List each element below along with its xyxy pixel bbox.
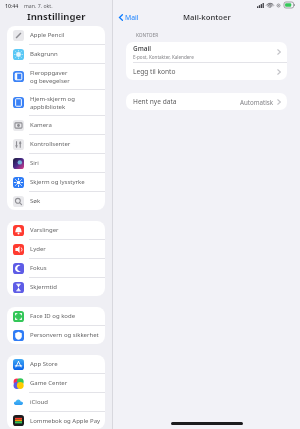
staticText: Skjermtid xyxy=(30,283,57,291)
staticText: iCloud xyxy=(30,398,48,406)
button[interactable]: Bakgrunn xyxy=(7,45,105,63)
button[interactable]: App Store xyxy=(7,355,105,373)
staticText: Bakgrunn xyxy=(30,50,58,58)
staticText: E-post, Kontakter, Kalendere xyxy=(133,54,194,60)
button[interactable]: Fleroppgaver og bevegelser xyxy=(7,64,105,89)
staticText: Automatisk xyxy=(240,98,274,106)
button[interactable]: Skjerm og lysstyrke xyxy=(7,173,105,191)
staticText: Legg til konto xyxy=(133,67,277,76)
button[interactable]: Hjem-skjerm og appbibliotek xyxy=(7,90,105,115)
button[interactable]: Hent nye data xyxy=(126,93,287,110)
staticText: man. 7. okt. xyxy=(24,2,53,9)
staticText: Mail-kontoer xyxy=(183,12,231,22)
staticText: Kamera xyxy=(30,121,52,129)
button[interactable]: Lommebok og Apple Pay xyxy=(7,412,105,429)
staticText: Fokus xyxy=(30,264,47,272)
button[interactable]: Face ID og kode xyxy=(7,307,105,325)
staticText: Skjerm og lysstyrke xyxy=(30,178,85,186)
staticText: Søk xyxy=(30,197,41,205)
button[interactable]: Skjermtid xyxy=(7,278,105,296)
staticText: Personvern og sikkerhet xyxy=(30,331,99,339)
button[interactable]: Apple Pencil xyxy=(7,26,105,44)
staticText: Game Center xyxy=(30,379,68,387)
staticText: Fleroppgaver og bevegelser xyxy=(30,69,70,84)
button[interactable]: Søk xyxy=(7,192,105,210)
button[interactable]: Gmail xyxy=(126,42,287,62)
staticText: Kontrollsenter xyxy=(30,140,71,148)
staticText: Lyder xyxy=(30,245,46,253)
staticText: Varslinger xyxy=(30,226,59,234)
staticText: Face ID og kode xyxy=(30,312,76,320)
button[interactable]: Mail xyxy=(117,12,141,23)
button[interactable]: Legg til konto xyxy=(126,63,287,80)
staticText: KONTOER xyxy=(136,32,159,39)
button[interactable]: Kontrollsenter xyxy=(7,135,105,153)
staticText: App Store xyxy=(30,360,58,368)
button[interactable]: Varslinger xyxy=(7,221,105,239)
staticText: Innstillinger xyxy=(27,10,86,22)
staticText: Hent nye data xyxy=(133,97,240,106)
button[interactable]: Lyder xyxy=(7,240,105,258)
button[interactable]: iCloud xyxy=(7,393,105,411)
button[interactable]: Kamera xyxy=(7,116,105,134)
staticText: 10:44 xyxy=(5,2,19,9)
staticText: Gmail xyxy=(133,44,152,53)
button[interactable]: Game Center xyxy=(7,374,105,392)
staticText: Mail xyxy=(125,13,139,22)
button[interactable]: Siri xyxy=(7,154,105,172)
staticText: Apple Pencil xyxy=(30,31,65,39)
staticText: Siri xyxy=(30,159,39,167)
button[interactable]: Personvern og sikkerhet xyxy=(7,326,105,344)
button[interactable]: Fokus xyxy=(7,259,105,277)
staticText: Hjem-skjerm og appbibliotek xyxy=(30,95,75,110)
staticText: Lommebok og Apple Pay xyxy=(30,417,101,425)
